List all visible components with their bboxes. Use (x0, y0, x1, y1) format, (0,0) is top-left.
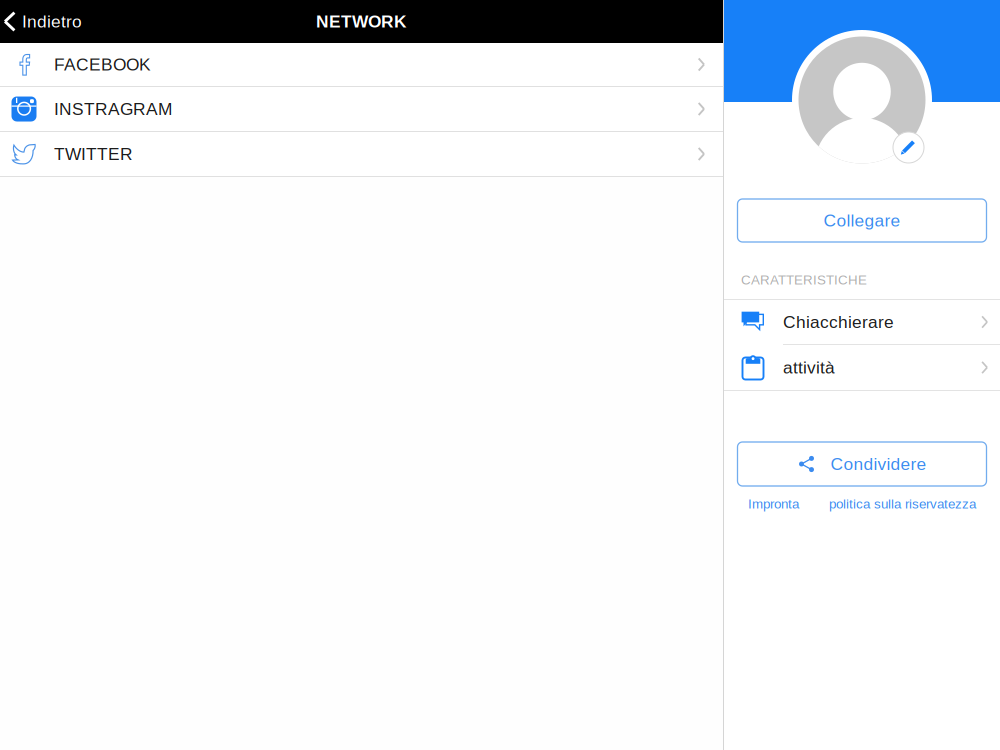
button[interactable]: TWITTER (0, 132, 723, 177)
staticText: attività (783, 358, 835, 377)
staticText: TWITTER (54, 144, 133, 164)
staticText: FACEBOOK (54, 55, 151, 74)
staticText: Condividere (830, 454, 926, 474)
button[interactable]: Indietro (0, 0, 92, 43)
staticText: Collegare (823, 211, 900, 230)
button[interactable]: Condividere (737, 442, 986, 486)
staticText: Impronta (748, 497, 799, 511)
staticText: Chiacchierare (783, 312, 894, 332)
button[interactable]: politica sulla riservatezza (829, 497, 976, 511)
button[interactable]: INSTRAGRAM (0, 87, 723, 132)
staticText: INSTRAGRAM (54, 99, 172, 119)
staticText: NETWORK (316, 12, 407, 31)
button[interactable]: FACEBOOK (0, 43, 723, 87)
button[interactable]: Impronta (748, 497, 799, 511)
staticText: politica sulla riservatezza (829, 497, 976, 511)
button[interactable]: attività (724, 345, 1000, 390)
button[interactable]: Chiacchierare (724, 300, 1000, 345)
staticText: CARATTERISTICHE (741, 273, 867, 287)
button[interactable]: Collegare (737, 199, 986, 242)
staticText: Indietro (22, 12, 82, 31)
